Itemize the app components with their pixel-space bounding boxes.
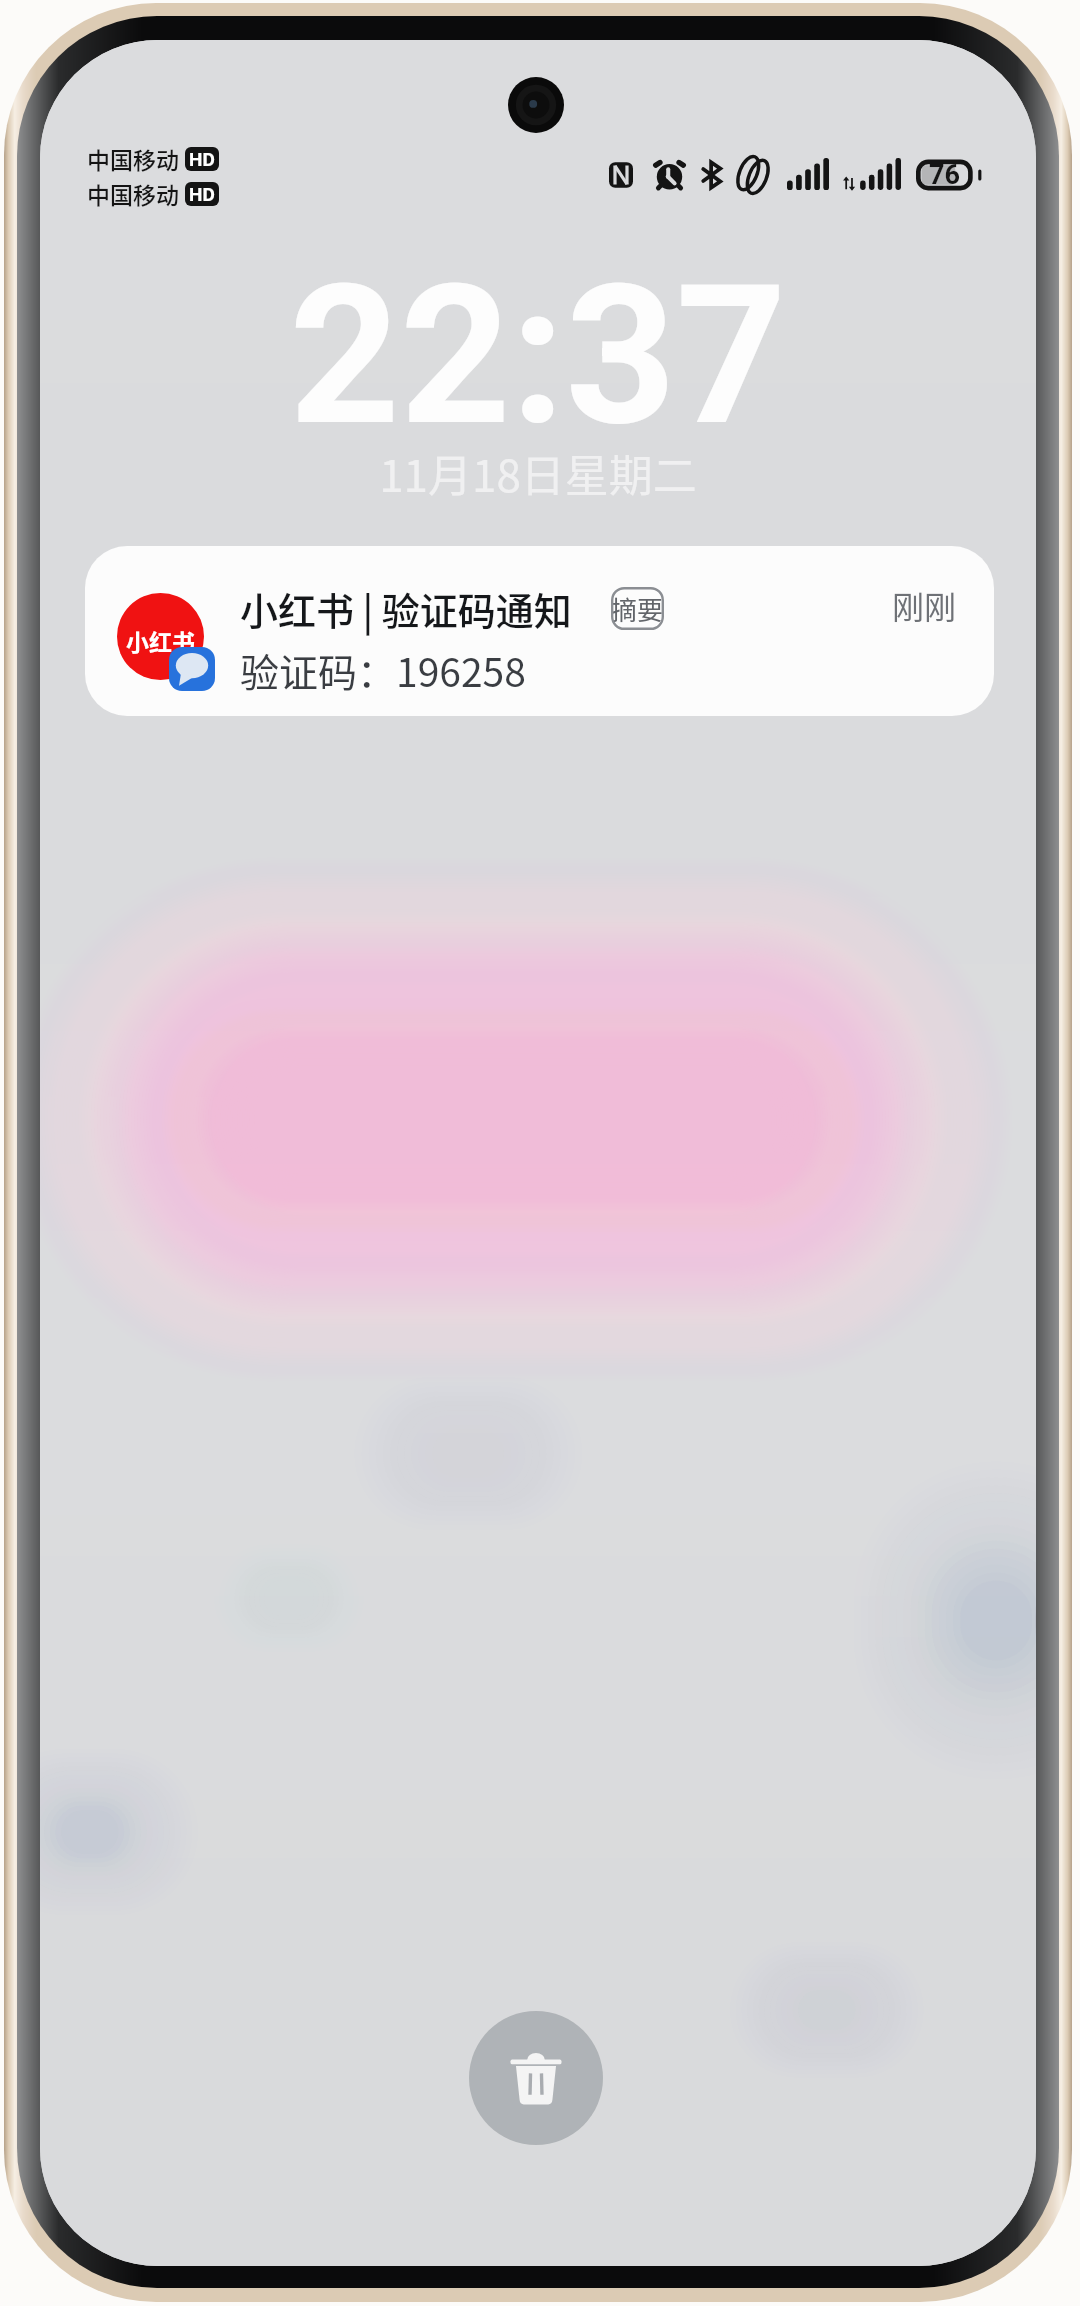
staticText: 76 xyxy=(929,159,960,191)
staticText: 小红书 xyxy=(126,624,195,657)
button[interactable]: 摘要 xyxy=(600,587,675,630)
staticText: 刚刚 xyxy=(892,582,957,628)
staticText: 验证码：196258 xyxy=(240,642,526,698)
staticText: 中国移动 xyxy=(87,142,179,175)
button[interactable]: 小红书 xyxy=(85,546,994,716)
staticText: 摘要 xyxy=(611,590,664,628)
staticText: HD xyxy=(189,183,215,205)
staticText: 中国移动 xyxy=(87,177,179,210)
staticText: 11月18日星期二 xyxy=(379,441,697,505)
staticText: 小红书 | 验证码通知 xyxy=(240,581,572,636)
staticText: 22:37 xyxy=(289,243,787,469)
button[interactable]: Delete notification xyxy=(469,2011,603,2145)
staticText: HD xyxy=(189,148,215,170)
